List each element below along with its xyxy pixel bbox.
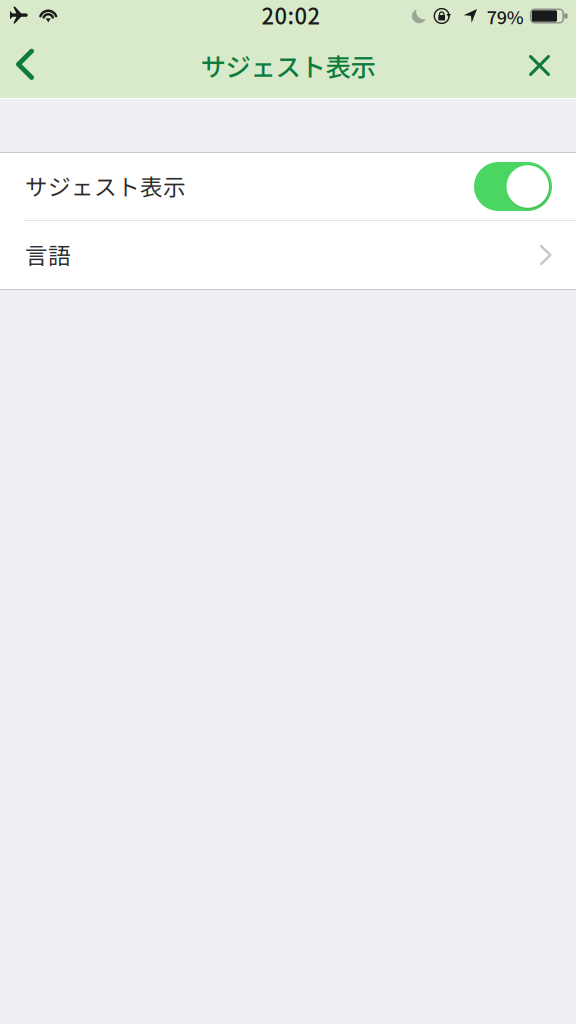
staticText: サジェスト表示	[25, 169, 186, 202]
button[interactable]: Close	[513, 33, 576, 98]
button[interactable]: Back	[0, 33, 50, 98]
button[interactable]: サジェスト表示	[0, 153, 576, 220]
staticText: 言語	[25, 238, 71, 270]
button[interactable]: 言語	[0, 221, 576, 289]
staticText: サジェスト表示	[200, 47, 375, 84]
staticText: 79%	[487, 3, 524, 30]
staticText: 20:02	[261, 0, 320, 31]
